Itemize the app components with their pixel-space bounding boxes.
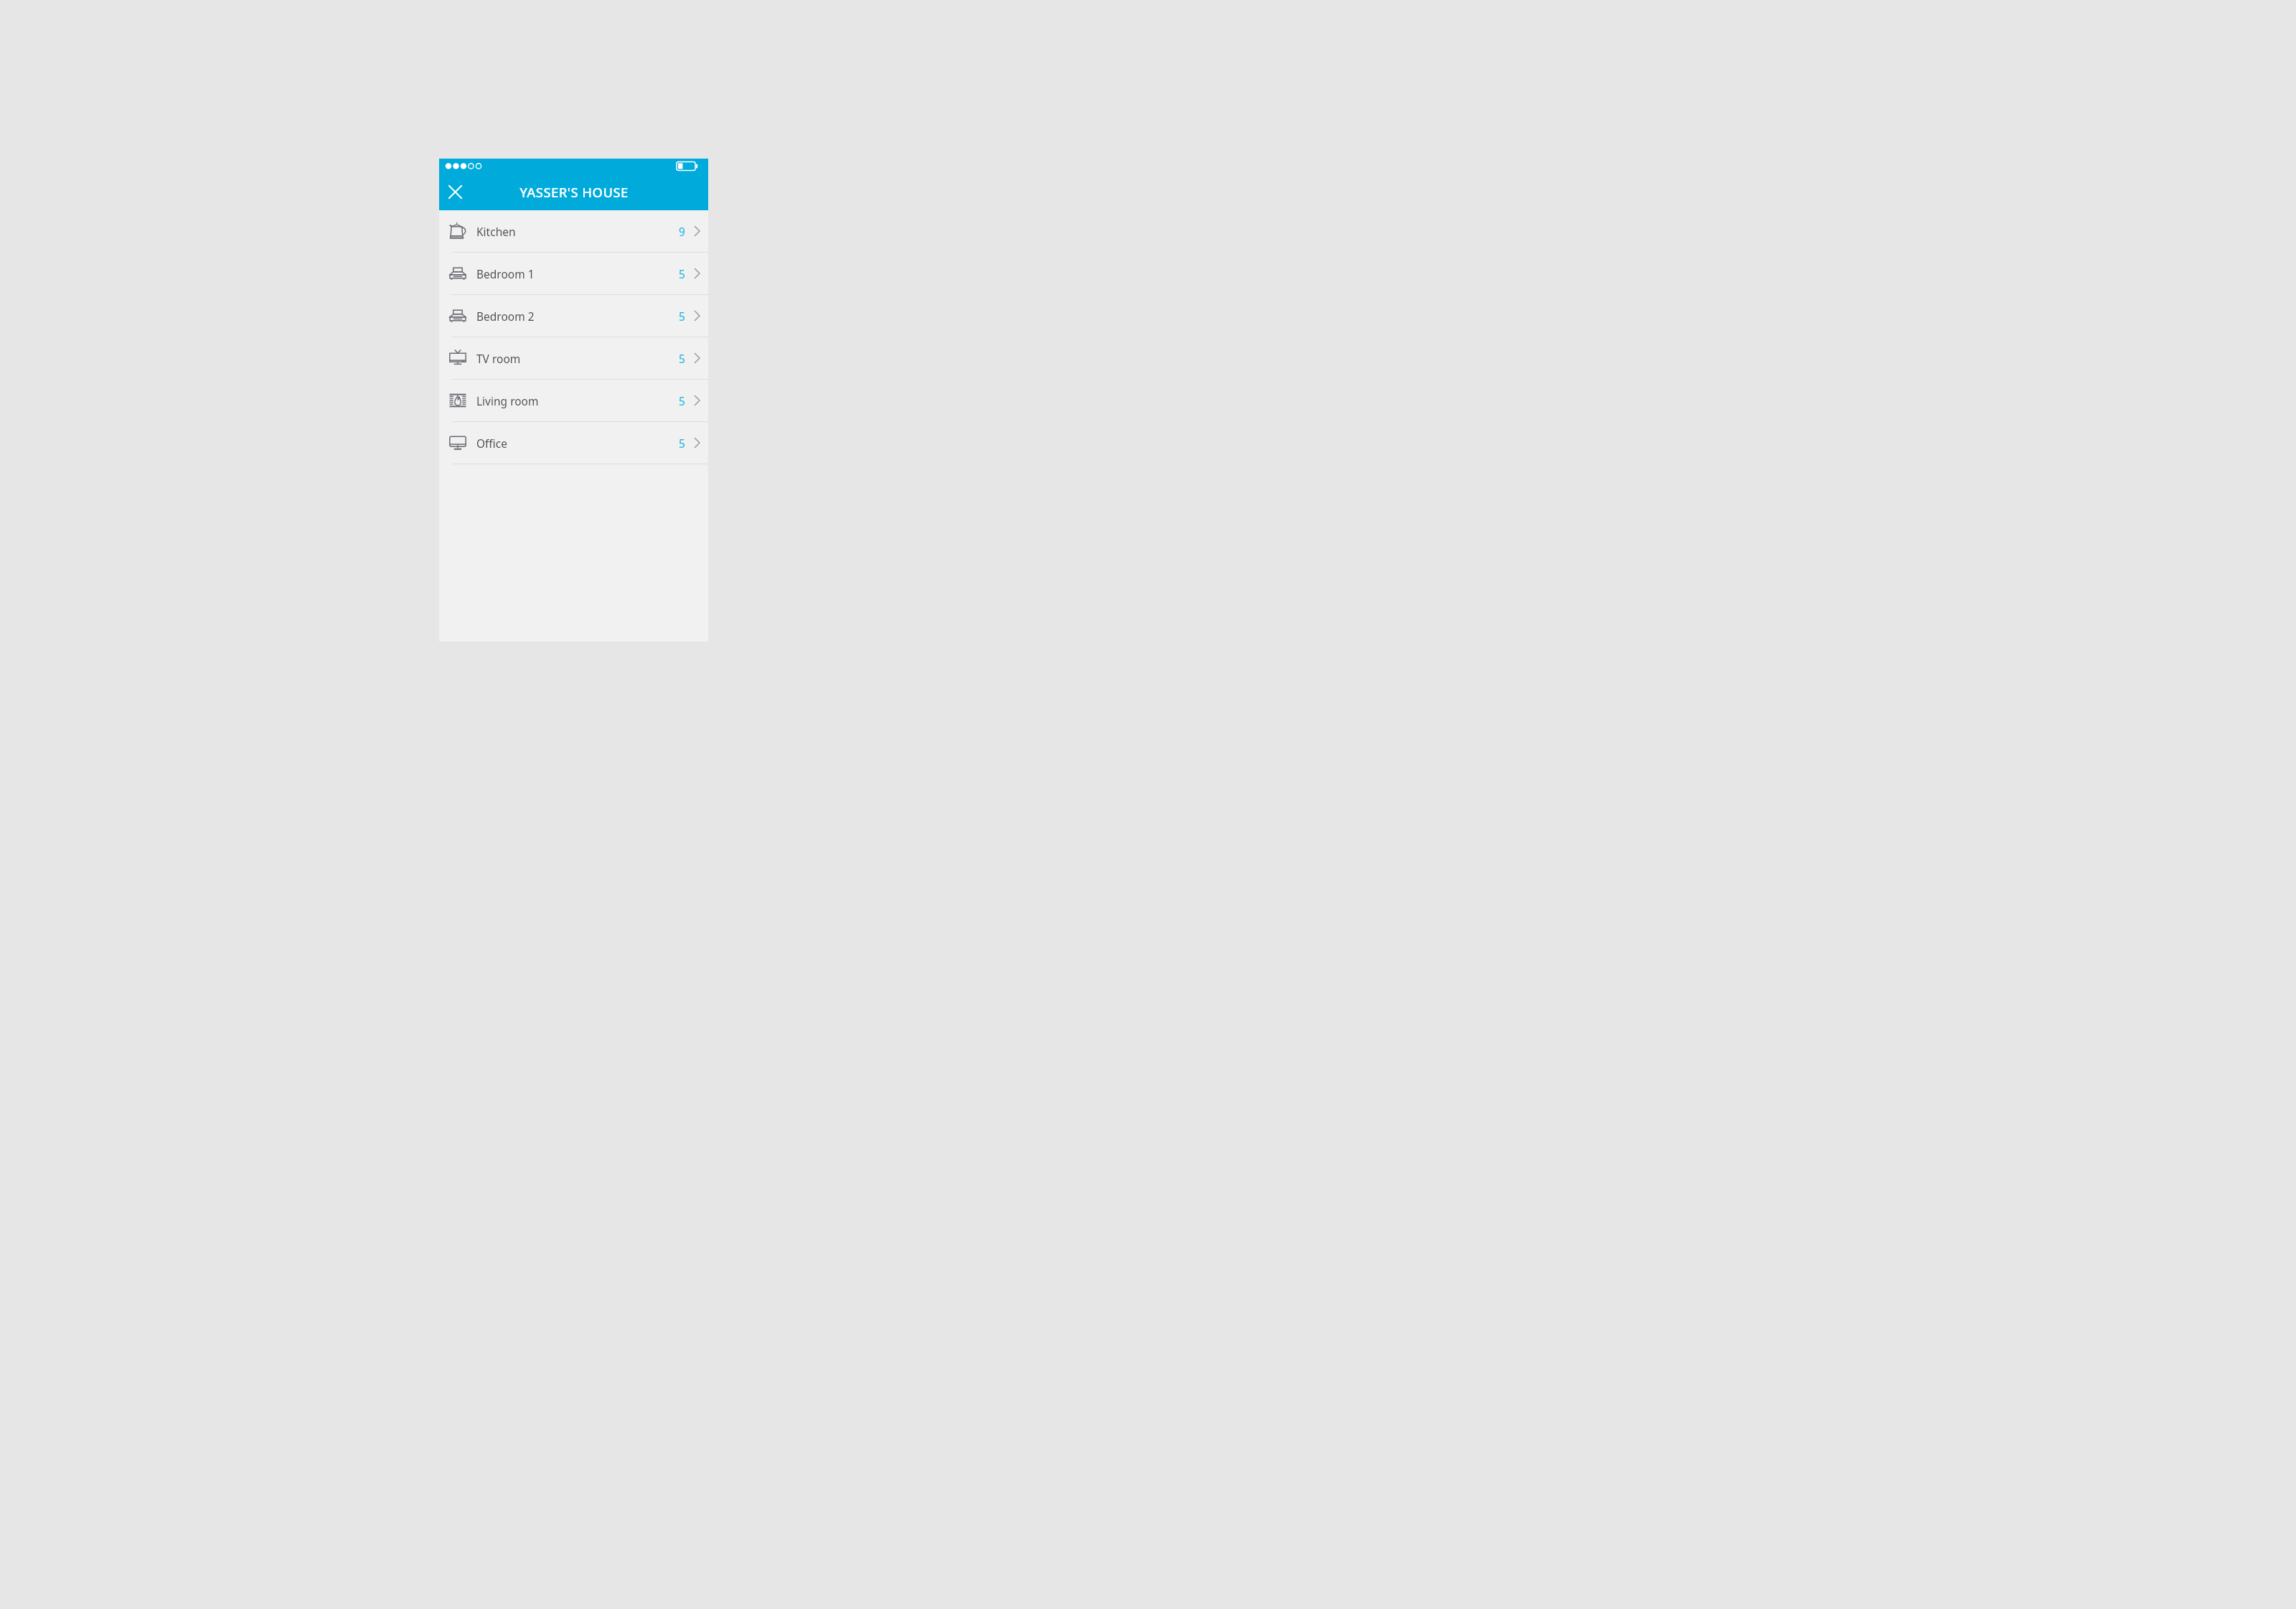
button[interactable]: Living room: [439, 380, 708, 422]
staticText: 5: [679, 436, 685, 451]
staticText: Kitchen: [476, 224, 679, 239]
staticText: 5: [679, 309, 685, 324]
staticText: YASSER'S HOUSE: [519, 183, 629, 201]
staticText: Bedroom 2: [476, 309, 679, 324]
staticText: 5: [679, 393, 685, 408]
button[interactable]: Kitchen: [439, 210, 708, 253]
button[interactable]: Office: [439, 422, 708, 464]
staticText: Office: [476, 436, 679, 451]
button[interactable]: Close: [439, 176, 471, 207]
staticText: Bedroom 1: [476, 266, 679, 281]
button[interactable]: Bedroom 2: [439, 295, 708, 337]
staticText: 9: [679, 224, 685, 239]
staticText: Living room: [476, 393, 679, 408]
staticText: TV room: [476, 351, 679, 366]
staticText: 5: [679, 266, 685, 281]
button[interactable]: Bedroom 1: [439, 253, 708, 295]
staticText: 5: [679, 351, 685, 366]
button[interactable]: TV room: [439, 337, 708, 380]
